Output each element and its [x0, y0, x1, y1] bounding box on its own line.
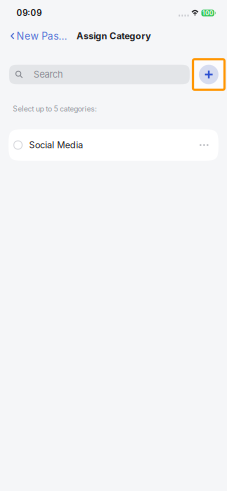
staticText: Social Media: [29, 140, 83, 151]
staticText: Select up to 5 categories:: [13, 104, 97, 113]
staticText: 09:09: [16, 8, 41, 18]
button[interactable]: Add category: [193, 59, 224, 90]
staticText: Assign Category: [76, 30, 150, 41]
staticText: Search: [33, 69, 62, 80]
staticText: 100: [202, 9, 213, 17]
button[interactable]: Social Media: [8, 129, 218, 161]
button[interactable]: New Pas…: [0, 27, 67, 45]
staticText: New Pas…: [16, 30, 67, 42]
button[interactable]: Search: [9, 65, 190, 84]
